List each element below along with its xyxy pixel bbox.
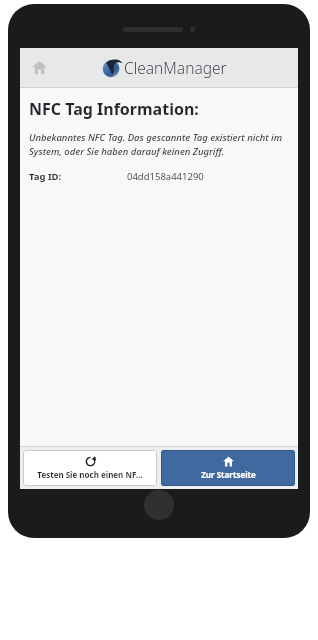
staticText: CleanManager xyxy=(124,57,227,78)
staticText: Testen Sie noch einen NF… xyxy=(37,469,143,480)
staticText: 04dd158a441290 xyxy=(127,170,204,183)
staticText: NFC Tag Information: xyxy=(29,98,199,120)
button[interactable]: Zur Startseite xyxy=(161,450,295,486)
button[interactable]: Home xyxy=(20,48,58,87)
button[interactable]: Testen Sie noch einen NF… xyxy=(23,450,157,486)
staticText: Zur Startseite xyxy=(201,469,256,480)
button[interactable]: CleanManager xyxy=(102,57,227,78)
staticText: Unbekanntes NFC Tag. Das gescannte Tag e… xyxy=(29,131,284,157)
other: Home button xyxy=(144,490,174,520)
staticText: Tag ID: xyxy=(29,170,62,183)
